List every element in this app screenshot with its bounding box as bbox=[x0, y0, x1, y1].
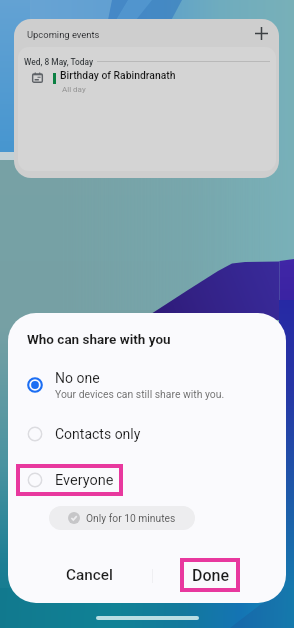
staticText: Your devices can still share with you. bbox=[55, 388, 225, 400]
button[interactable]: Birthday of Rabindranath bbox=[18, 68, 276, 100]
staticText: Only for 10 minutes bbox=[86, 512, 176, 524]
staticText: Birthday of Rabindranath bbox=[60, 69, 176, 81]
staticText: Who can share with you bbox=[27, 331, 171, 347]
button[interactable]: No one bbox=[8, 370, 286, 400]
staticText: Contacts only bbox=[55, 426, 141, 442]
button[interactable]: Only for 10 minutes bbox=[49, 506, 195, 530]
staticText: Upcoming events bbox=[27, 29, 100, 40]
staticText: All day bbox=[62, 85, 86, 94]
staticText: Everyone bbox=[55, 472, 114, 489]
button[interactable]: Everyone bbox=[8, 467, 286, 493]
button[interactable]: Cancel bbox=[28, 557, 150, 603]
button[interactable]: Add event bbox=[248, 20, 275, 47]
button[interactable]: Done bbox=[149, 557, 271, 603]
staticText: Cancel bbox=[66, 566, 113, 584]
button[interactable]: Contacts only bbox=[8, 421, 286, 447]
staticText: No one bbox=[55, 370, 100, 386]
staticText: Done bbox=[192, 566, 229, 585]
staticText: Wed, 8 May, Today bbox=[24, 57, 94, 67]
